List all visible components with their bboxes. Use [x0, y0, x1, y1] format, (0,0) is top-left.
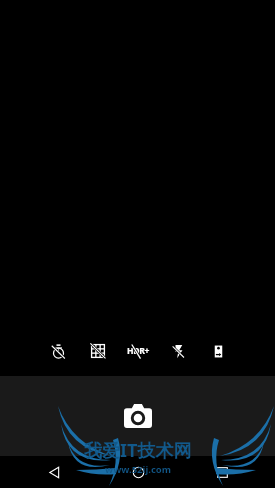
staticText: www.52ij.com [105, 463, 171, 476]
staticText: HDR+ [127, 345, 150, 357]
button[interactable]: Recents [206, 456, 238, 488]
button[interactable]: Switch camera [198, 331, 238, 371]
button[interactable]: Timer off [38, 331, 78, 371]
button[interactable]: Back [38, 456, 70, 488]
button[interactable]: HDR off [118, 331, 158, 371]
button[interactable]: Shutter [110, 388, 166, 444]
button[interactable]: Grid off [78, 331, 118, 371]
staticText: 我爱IT技术网 [84, 438, 192, 463]
button[interactable]: Home [122, 456, 154, 488]
button[interactable]: Flash off [158, 331, 198, 371]
